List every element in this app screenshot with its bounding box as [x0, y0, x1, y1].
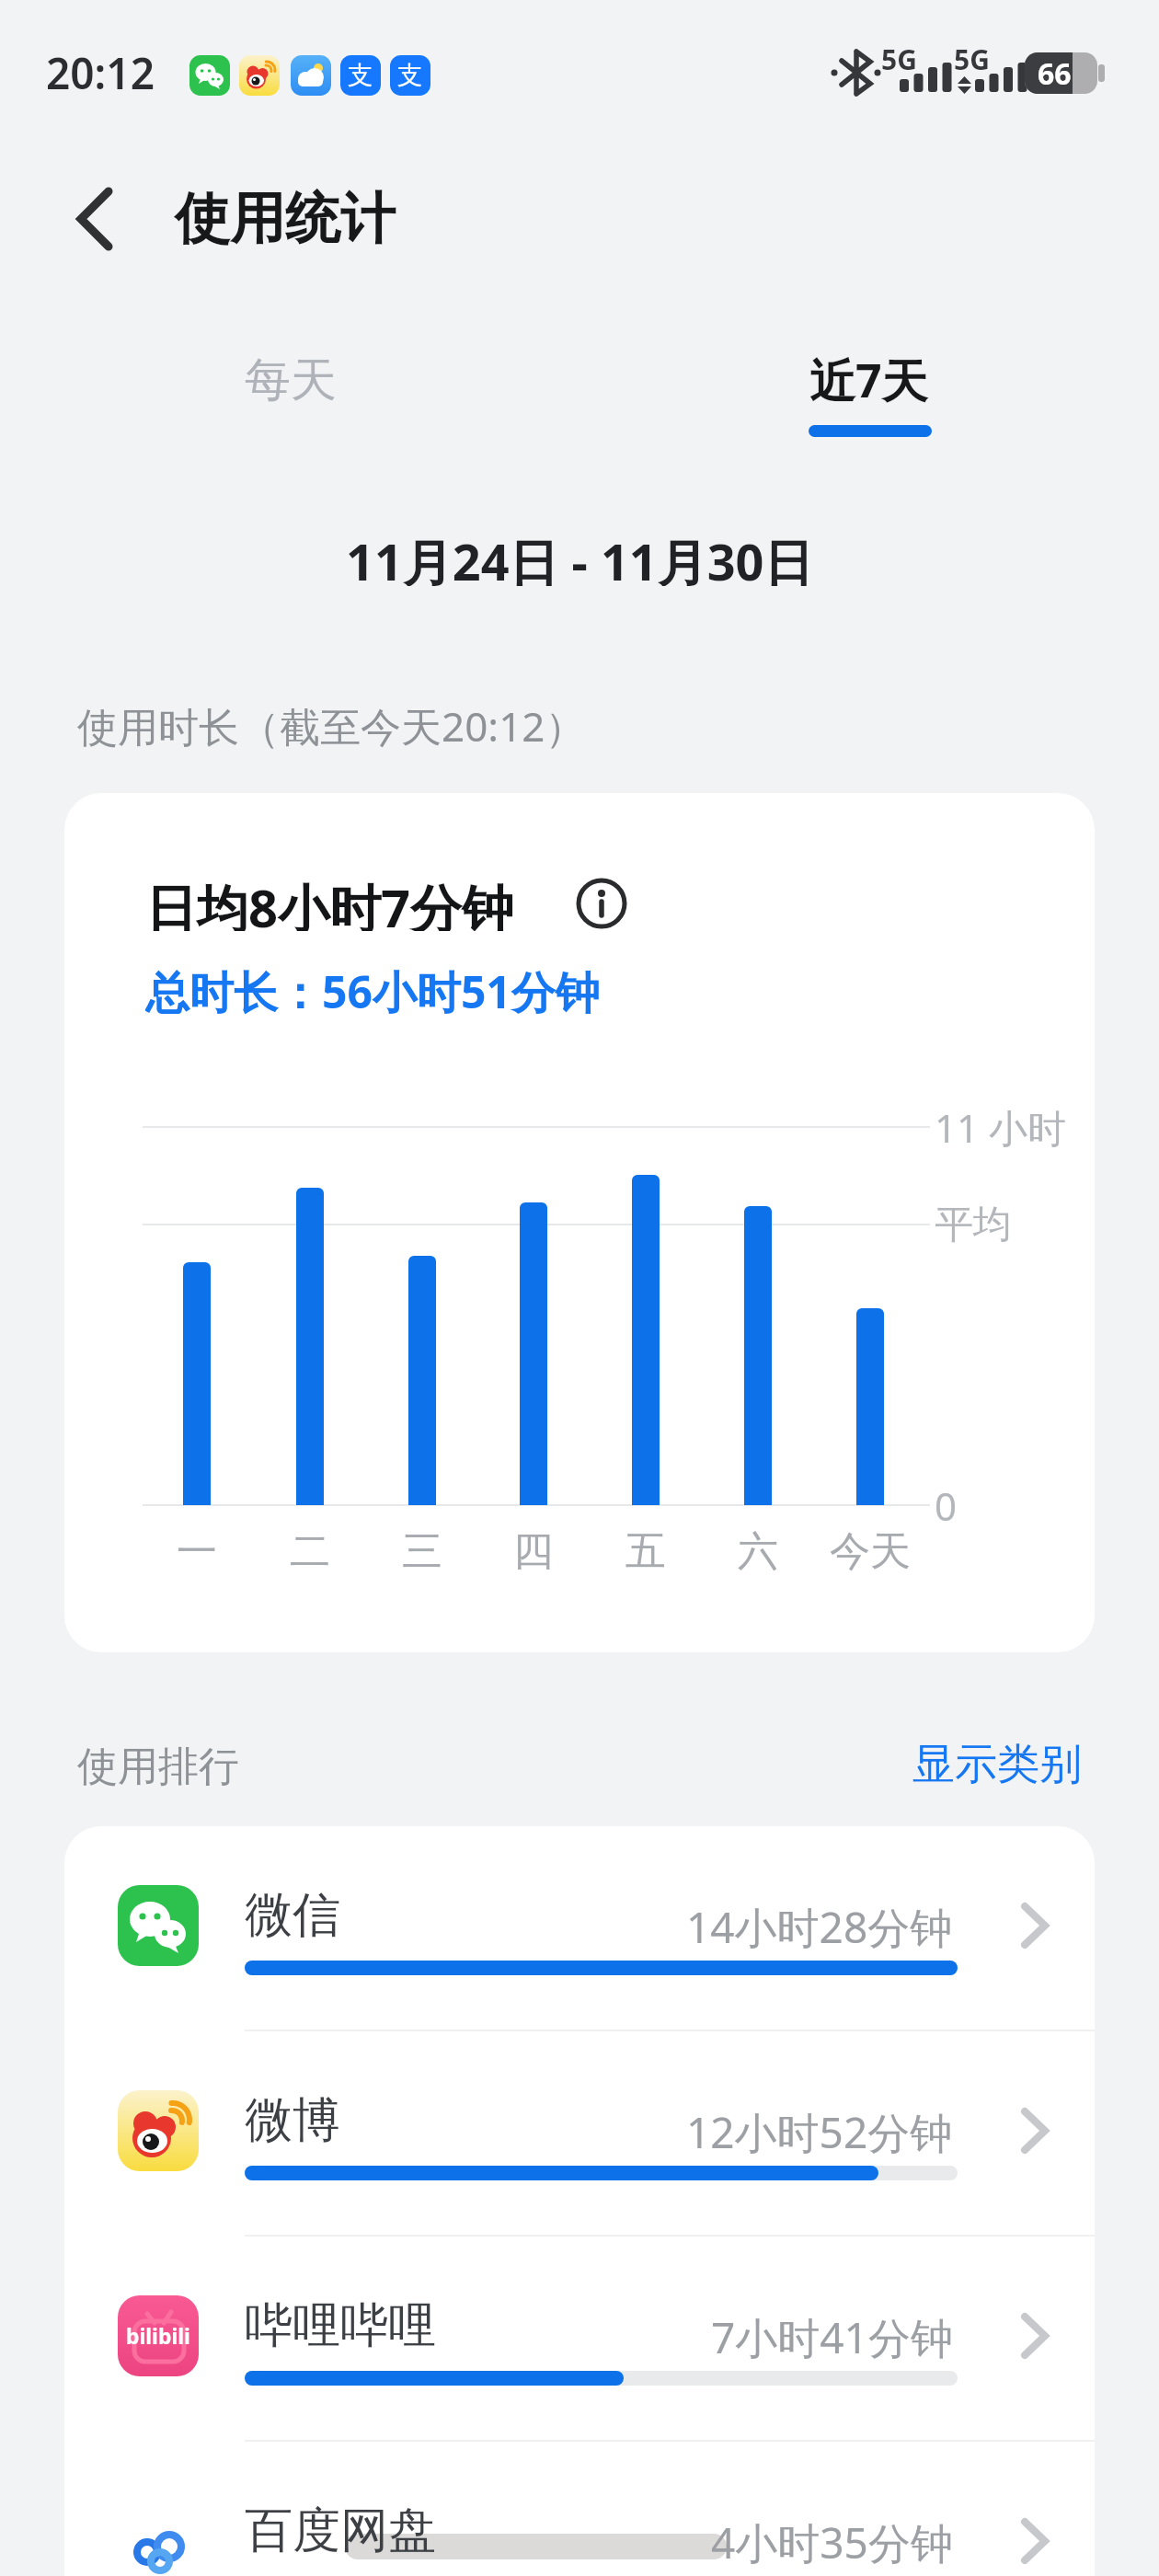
staticText: 12小时52分钟: [686, 2103, 953, 2156]
staticText: 六: [738, 1526, 778, 1577]
staticText: 4小时35分钟: [711, 2513, 953, 2567]
staticText: 二: [290, 1526, 330, 1577]
staticText: 今天: [830, 1526, 911, 1577]
staticText: 支: [397, 60, 423, 91]
staticText: 使用时长（截至今天20:12）: [77, 698, 586, 753]
staticText: 5G: [954, 40, 990, 74]
staticText: 每天: [245, 351, 337, 409]
staticText: 0: [935, 1479, 958, 1532]
button[interactable]: 每天: [208, 348, 373, 412]
staticText: 五: [625, 1526, 666, 1577]
staticText: 百度网盘: [245, 2501, 436, 2554]
staticText: 一: [177, 1526, 217, 1577]
staticText: 微信: [245, 1885, 340, 1938]
staticText: 使用排行: [77, 1742, 239, 1792]
staticText: 显示类别: [912, 1738, 1082, 1791]
staticText: 11 小时: [935, 1101, 1066, 1154]
button[interactable]: 百度网盘: [64, 2442, 1095, 2576]
staticText: 总时长：56小时51分钟: [145, 961, 600, 1017]
staticText: 7小时41分钟: [711, 2308, 953, 2362]
staticText: 11月24日 - 11月30日: [346, 527, 814, 586]
staticText: 三: [402, 1526, 442, 1577]
button[interactable]: [55, 179, 138, 259]
staticText: bilibili: [126, 2322, 190, 2351]
button[interactable]: 显示类别: [819, 1737, 1082, 1792]
staticText: 20:12: [46, 44, 155, 99]
staticText: 平均: [935, 1201, 1012, 1249]
button[interactable]: 微博: [64, 2031, 1095, 2237]
staticText: 日均8小时7分钟: [145, 872, 514, 931]
staticText: 66: [1038, 53, 1072, 94]
button[interactable]: 微信: [64, 1826, 1095, 2031]
button[interactable]: 近7天: [786, 348, 951, 412]
staticText: 使用统计: [175, 184, 396, 254]
staticText: 哔哩哔哩: [245, 2295, 436, 2349]
staticText: 支: [348, 60, 373, 91]
staticText: 近7天: [809, 349, 928, 411]
staticText: 14小时28分钟: [686, 1898, 953, 1951]
button[interactable]: bilibili: [64, 2237, 1095, 2442]
staticText: 四: [513, 1526, 554, 1577]
staticText: 5G: [881, 40, 917, 74]
staticText: 微博: [245, 2090, 340, 2144]
